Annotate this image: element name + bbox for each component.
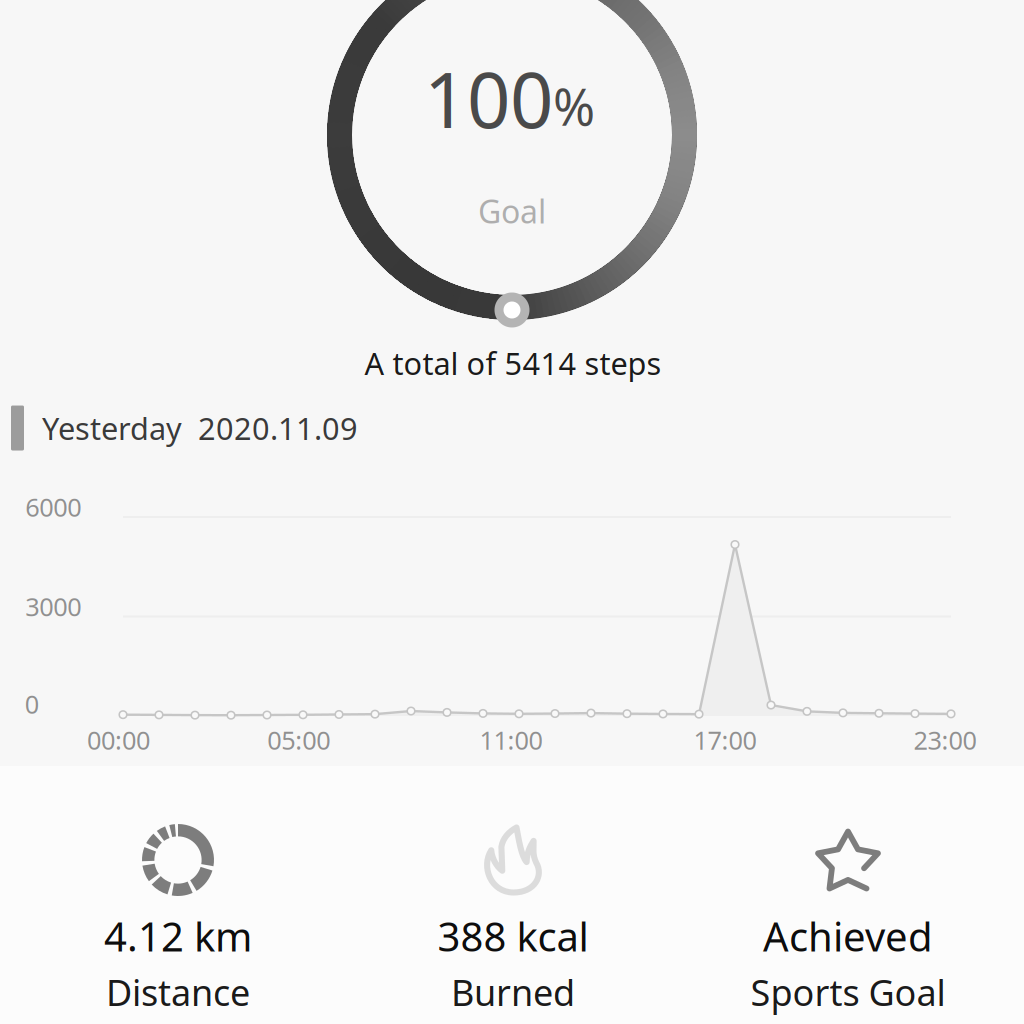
staticText: Yesterday 2020.11.09 (42, 408, 358, 448)
button[interactable]: 388 kcal (346, 766, 680, 1024)
staticText: 05:00 (267, 723, 330, 757)
staticText: 00:00 (87, 723, 150, 757)
staticText: % (553, 72, 595, 140)
staticText: 3000 (25, 590, 81, 623)
staticText: Achieved (763, 909, 933, 962)
staticText: Burned (451, 968, 575, 1016)
staticText: 23:00 (913, 723, 976, 757)
staticText: Goal (478, 190, 546, 232)
staticText: Distance (106, 968, 250, 1016)
staticText: 11:00 (479, 723, 542, 757)
staticText: 100 (424, 48, 553, 149)
staticText: 4.12 km (104, 909, 252, 962)
staticText: 388 kcal (437, 909, 588, 962)
button[interactable]: 4.12 km (11, 766, 345, 1024)
button[interactable]: Achieved (681, 766, 1015, 1024)
staticText: Sports Goal (750, 968, 945, 1016)
staticText: A total of 5414 steps (364, 343, 661, 383)
staticText: 17:00 (693, 723, 756, 757)
staticText: 0 (25, 687, 39, 721)
staticText: 6000 (25, 490, 81, 524)
